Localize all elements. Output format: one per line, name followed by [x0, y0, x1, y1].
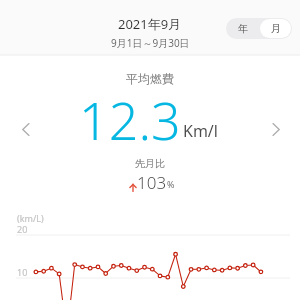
- staticText: 月: [271, 22, 281, 35]
- staticText: 12.3: [79, 84, 181, 155]
- staticText: 2021年9月: [118, 15, 182, 33]
- button[interactable]: Next period: [261, 115, 291, 143]
- button[interactable]: Previous period: [11, 115, 41, 143]
- staticText: 10: [17, 266, 28, 278]
- staticText: (km/L): [17, 212, 44, 224]
- staticText: 9月1日～9月30日: [111, 36, 190, 50]
- staticText: 先月比: [135, 157, 165, 170]
- staticText: Km/l: [183, 120, 218, 142]
- staticText: 20: [17, 223, 28, 235]
- staticText: 年: [238, 22, 248, 35]
- staticText: 平均燃費: [126, 71, 174, 86]
- staticText: 103: [137, 171, 167, 194]
- button[interactable]: 年: [226, 18, 259, 39]
- staticText: %: [167, 178, 175, 190]
- button[interactable]: 月: [260, 19, 291, 38]
